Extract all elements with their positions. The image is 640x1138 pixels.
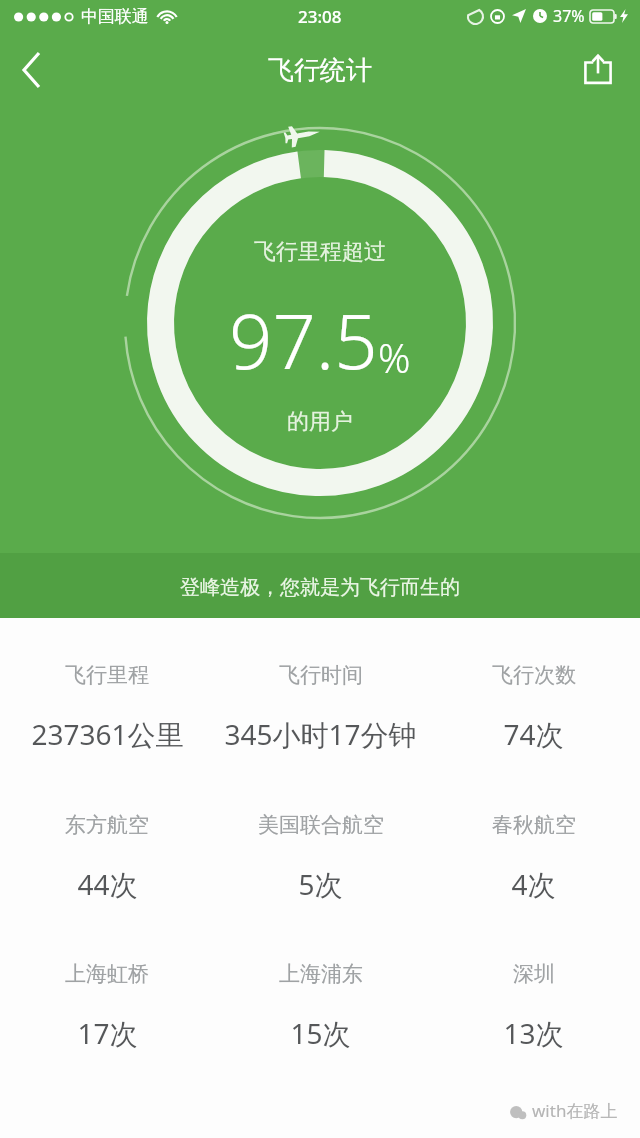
staticText: 37% bbox=[553, 5, 585, 27]
staticText: 5次 bbox=[298, 865, 343, 903]
staticText: 44次 bbox=[77, 865, 138, 903]
button[interactable]: 飞行里程 bbox=[0, 662, 214, 753]
staticText: 上海虹桥 bbox=[65, 961, 149, 987]
staticText: with在路上 bbox=[532, 1099, 618, 1122]
staticText: 中国联通 bbox=[81, 6, 149, 27]
button[interactable]: Share bbox=[570, 42, 626, 98]
button[interactable]: 上海浦东 bbox=[214, 961, 427, 1052]
staticText: 13次 bbox=[503, 1014, 564, 1052]
button[interactable]: 深圳 bbox=[427, 961, 640, 1052]
staticText: 春秋航空 bbox=[492, 812, 576, 838]
staticText: 237361公里 bbox=[31, 715, 184, 753]
button[interactable]: 飞行时间 bbox=[214, 662, 427, 753]
staticText: 东方航空 bbox=[65, 812, 149, 838]
button[interactable]: Back bbox=[0, 38, 64, 102]
staticText: 的用户 bbox=[287, 408, 353, 436]
staticText: 23:08 bbox=[298, 5, 342, 28]
staticText: 飞行时间 bbox=[279, 662, 363, 688]
staticText: % bbox=[378, 330, 411, 384]
staticText: 4次 bbox=[511, 865, 556, 903]
button[interactable]: 飞行次数 bbox=[427, 662, 640, 753]
staticText: 飞行里程 bbox=[65, 662, 149, 688]
staticText: 97.5 bbox=[229, 288, 378, 392]
staticText: 飞行次数 bbox=[492, 662, 576, 688]
button[interactable]: 东方航空 bbox=[0, 812, 214, 903]
staticText: 74次 bbox=[503, 715, 564, 753]
staticText: 17次 bbox=[77, 1014, 138, 1052]
staticText: 飞行统计 bbox=[268, 54, 372, 87]
button[interactable]: 美国联合航空 bbox=[214, 812, 427, 903]
staticText: 登峰造极，您就是为飞行而生的 bbox=[180, 575, 460, 600]
staticText: 美国联合航空 bbox=[258, 812, 384, 838]
staticText: 飞行里程超过 bbox=[254, 238, 386, 266]
staticText: 15次 bbox=[290, 1014, 351, 1052]
staticText: 深圳 bbox=[513, 961, 555, 987]
staticText: 345小时17分钟 bbox=[224, 715, 417, 753]
button[interactable]: 春秋航空 bbox=[427, 812, 640, 903]
button[interactable]: 上海虹桥 bbox=[0, 961, 214, 1052]
staticText: 上海浦东 bbox=[279, 961, 363, 987]
